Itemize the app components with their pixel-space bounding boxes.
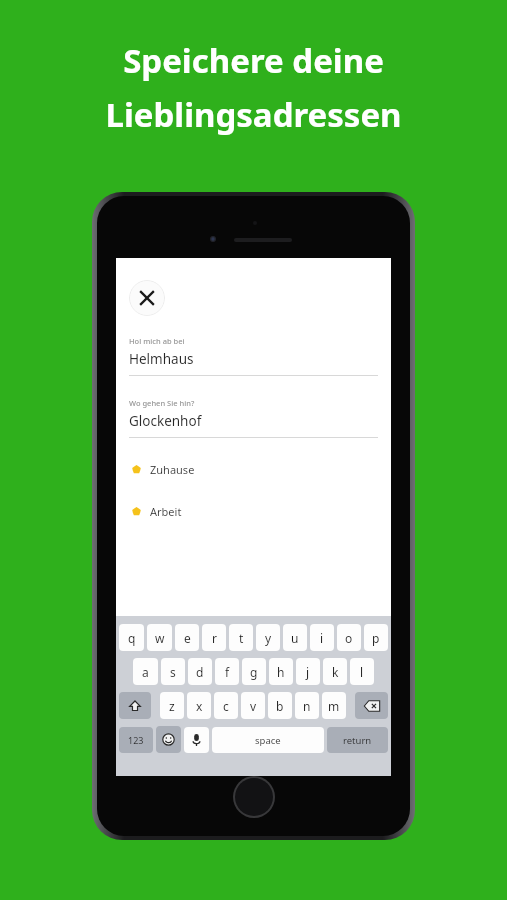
staticText: Helmhaus: [129, 350, 194, 368]
button[interactable]: space: [212, 727, 324, 753]
staticText: Wo gehen Sie hin?: [129, 398, 195, 408]
staticText: Lieblingsadressen: [105, 92, 402, 137]
staticText: s: [170, 664, 176, 680]
staticText: w: [155, 630, 165, 646]
button[interactable]: Dictation: [184, 727, 209, 753]
button[interactable]: Emoji: [156, 726, 181, 753]
staticText: h: [277, 664, 285, 680]
staticText: g: [250, 664, 258, 680]
staticText: 123: [128, 734, 144, 746]
staticText: o: [345, 630, 353, 646]
button[interactable]: v: [241, 692, 265, 719]
button[interactable]: s: [161, 658, 185, 685]
button[interactable]: Arbeit: [129, 504, 378, 519]
button[interactable]: w: [147, 624, 172, 651]
button[interactable]: Backspace: [355, 692, 388, 719]
button[interactable]: l: [350, 658, 374, 685]
staticText: l: [360, 664, 364, 680]
button[interactable]: r: [202, 624, 226, 651]
button[interactable]: n: [295, 692, 319, 719]
staticText: z: [169, 698, 175, 714]
staticText: n: [303, 698, 311, 714]
button[interactable]: q: [119, 624, 144, 651]
staticText: x: [196, 698, 203, 714]
button[interactable]: k: [323, 658, 347, 685]
staticText: b: [276, 698, 284, 714]
button[interactable]: h: [269, 658, 293, 685]
button[interactable]: d: [188, 658, 212, 685]
button[interactable]: Close: [129, 280, 165, 316]
button[interactable]: c: [214, 692, 238, 719]
staticText: p: [372, 630, 380, 646]
staticText: k: [332, 664, 339, 680]
button[interactable]: Wo gehen Sie hin?: [129, 398, 378, 438]
button[interactable]: Hol mich ab bei: [129, 336, 378, 376]
button[interactable]: j: [296, 658, 320, 685]
staticText: f: [225, 664, 230, 680]
staticText: return: [343, 734, 372, 747]
button[interactable]: m: [322, 692, 346, 719]
staticText: i: [320, 630, 324, 646]
button[interactable]: f: [215, 658, 239, 685]
button[interactable]: z: [160, 692, 184, 719]
staticText: Speichere deine: [123, 38, 384, 83]
staticText: d: [196, 664, 204, 680]
button[interactable]: Home: [233, 776, 275, 818]
staticText: m: [328, 698, 340, 714]
button[interactable]: x: [187, 692, 211, 719]
button[interactable]: g: [242, 658, 266, 685]
button[interactable]: y: [256, 624, 280, 651]
staticText: Hol mich ab bei: [129, 336, 185, 346]
button[interactable]: b: [268, 692, 292, 719]
button[interactable]: t: [229, 624, 253, 651]
button[interactable]: a: [133, 658, 158, 685]
staticText: t: [239, 630, 244, 646]
button[interactable]: i: [310, 624, 334, 651]
button[interactable]: return: [327, 727, 388, 753]
staticText: a: [142, 664, 149, 680]
staticText: r: [212, 630, 217, 646]
staticText: j: [306, 664, 310, 680]
button[interactable]: Zuhause: [129, 462, 378, 477]
button[interactable]: o: [337, 624, 361, 651]
button[interactable]: u: [283, 624, 307, 651]
button[interactable]: p: [364, 624, 388, 651]
staticText: c: [223, 698, 229, 714]
button[interactable]: e: [175, 624, 199, 651]
button[interactable]: Shift: [119, 692, 151, 719]
staticText: v: [250, 698, 257, 714]
staticText: space: [255, 734, 281, 747]
staticText: e: [184, 630, 191, 646]
staticText: Zuhause: [150, 462, 195, 477]
staticText: q: [128, 630, 136, 646]
button[interactable]: 123: [119, 727, 153, 753]
staticText: Arbeit: [150, 504, 182, 519]
staticText: u: [291, 630, 299, 646]
staticText: Glockenhof: [129, 412, 202, 430]
staticText: y: [265, 630, 272, 646]
